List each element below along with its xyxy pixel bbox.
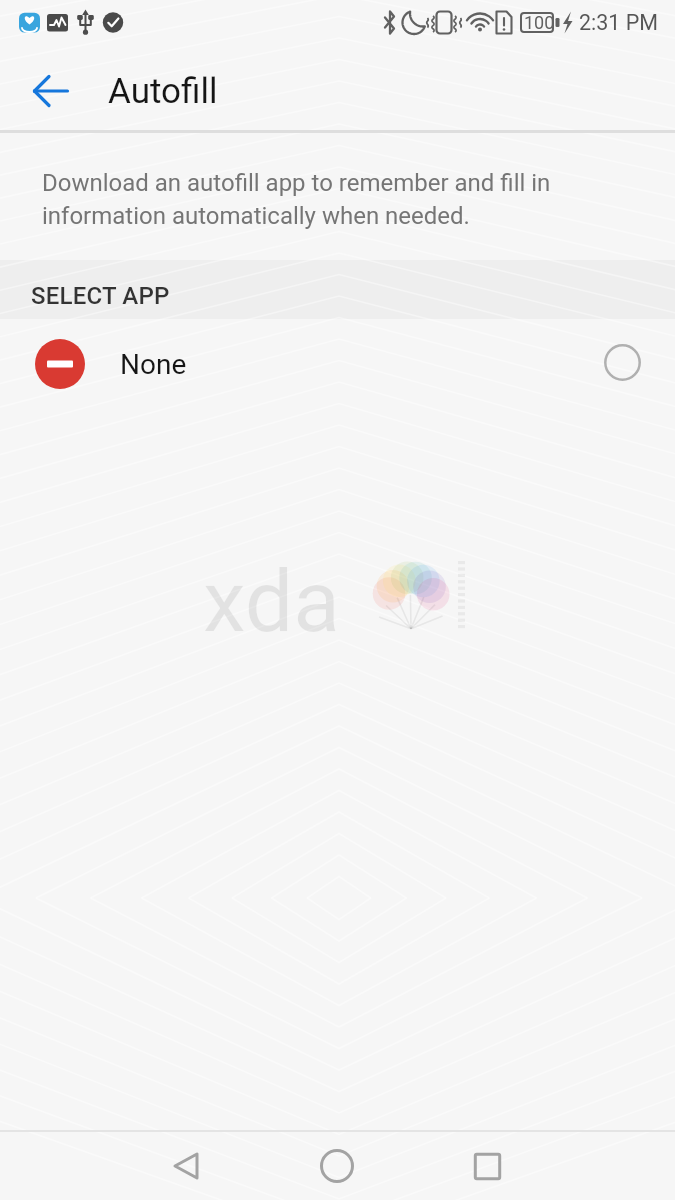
button[interactable]: Back — [157, 1135, 219, 1197]
button[interactable]: SELECT APP — [0, 260, 675, 319]
button[interactable]: Recents — [456, 1135, 518, 1197]
button[interactable]: Home — [306, 1135, 368, 1197]
button[interactable]: None — [0, 319, 675, 409]
button[interactable]: Select None — [591, 331, 653, 393]
staticText: SELECT APP — [31, 282, 170, 310]
staticText: Autofill — [108, 71, 218, 112]
staticText: None — [120, 348, 187, 381]
staticText: 100 — [524, 12, 555, 33]
staticText: xda — [203, 551, 341, 652]
button[interactable]: Back — [14, 54, 88, 128]
staticText: 2:31 PM — [579, 10, 659, 35]
staticText: Download an autofill app to remember and… — [42, 169, 675, 230]
